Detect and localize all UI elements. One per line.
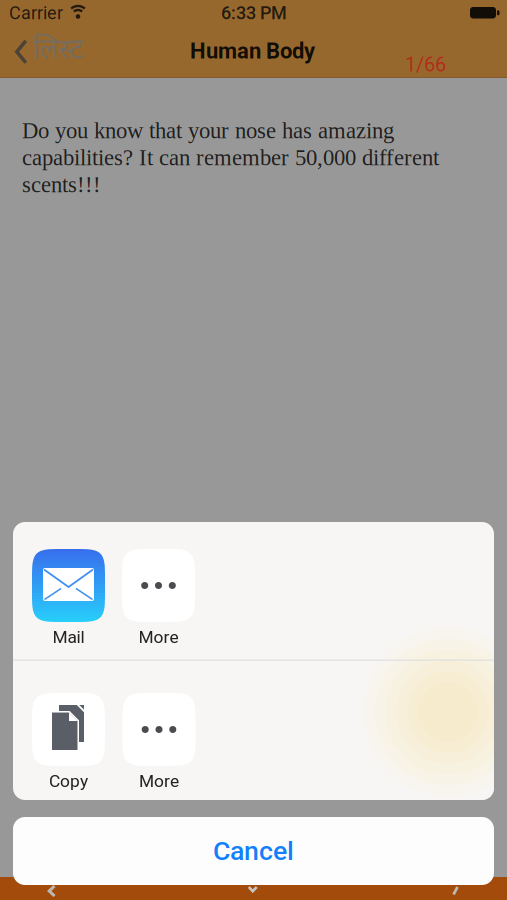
staticText: scents!!! — [22, 172, 101, 197]
button[interactable]: Cancel — [13, 817, 494, 885]
button[interactable]: लिस्ट — [15, 33, 83, 70]
staticText: 6:33 PM — [221, 2, 287, 24]
button[interactable]: More — [122, 693, 195, 791]
staticText: Mail — [52, 627, 84, 647]
button[interactable]: Copy — [32, 693, 105, 791]
staticText: Do you know that your nose has amazing — [22, 118, 394, 143]
staticText: लिस्ट — [32, 33, 83, 70]
staticText: Carrier — [9, 2, 63, 24]
button[interactable]: More — [122, 549, 195, 647]
button[interactable]: Mail — [32, 549, 105, 647]
staticText: More — [138, 627, 178, 647]
staticText: Copy — [49, 771, 88, 791]
staticText: More — [139, 771, 179, 791]
staticText: Human Body — [190, 38, 315, 64]
staticText: Cancel — [213, 835, 294, 867]
staticText: capabilities? It can remember 50,000 dif… — [22, 145, 439, 170]
staticText: 1/66 — [405, 53, 446, 76]
